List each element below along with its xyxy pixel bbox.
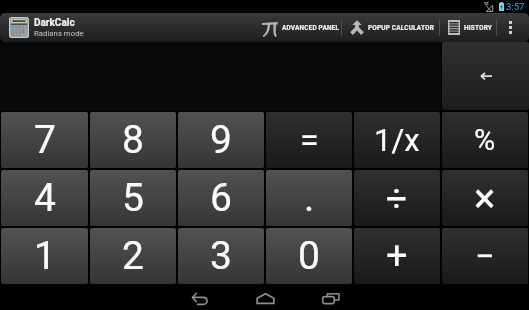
staticText: 3 bbox=[210, 233, 232, 279]
staticText: 9 bbox=[210, 117, 232, 163]
button[interactable]: 0 bbox=[266, 228, 352, 284]
button[interactable]: DarkCalc bbox=[0, 14, 110, 41]
staticText: ADVANCED PANEL bbox=[282, 24, 340, 32]
button[interactable]: 3 bbox=[178, 228, 264, 284]
button[interactable]: Home bbox=[250, 287, 280, 309]
staticText: 4 bbox=[34, 175, 56, 221]
staticText: Radians mode bbox=[34, 29, 84, 38]
staticText: POPUP CALCULATOR bbox=[368, 24, 434, 32]
button[interactable]: 1 bbox=[1, 228, 88, 284]
button[interactable]: Backspace bbox=[442, 42, 529, 110]
staticText: × bbox=[474, 175, 496, 222]
button[interactable]: 5 bbox=[90, 170, 176, 226]
staticText: 5 bbox=[122, 175, 144, 221]
staticText: 2 bbox=[122, 233, 144, 279]
button[interactable]: + bbox=[354, 228, 440, 284]
button[interactable]: = bbox=[266, 112, 352, 168]
button[interactable]: Recents bbox=[316, 287, 346, 309]
staticText: 0 bbox=[298, 233, 320, 279]
button[interactable]: 8 bbox=[90, 112, 176, 168]
button[interactable]: ÷ bbox=[354, 170, 440, 226]
button[interactable]: − bbox=[442, 228, 528, 284]
staticText: ÷ bbox=[386, 177, 408, 220]
button[interactable]: 1/x bbox=[354, 112, 440, 168]
button[interactable]: Back bbox=[184, 287, 214, 309]
button[interactable]: . bbox=[266, 170, 352, 226]
button[interactable]: 7 bbox=[1, 112, 88, 168]
button[interactable]: 4 bbox=[1, 170, 88, 226]
button[interactable]: More options bbox=[497, 13, 524, 42]
button[interactable]: × bbox=[442, 170, 528, 226]
button[interactable]: ADVANCED PANEL bbox=[242, 13, 341, 42]
staticText: 3:57 bbox=[506, 1, 525, 12]
button[interactable]: POPUP CALCULATOR bbox=[342, 13, 439, 42]
staticText: − bbox=[475, 236, 495, 276]
button[interactable]: HISTORY bbox=[440, 13, 496, 42]
staticText: + bbox=[386, 234, 408, 279]
staticText: 7 bbox=[34, 117, 56, 163]
staticText: 1/x bbox=[374, 122, 420, 158]
button[interactable]: 2 bbox=[90, 228, 176, 284]
staticText: = bbox=[300, 120, 319, 160]
staticText: % bbox=[474, 123, 496, 157]
button[interactable]: % bbox=[442, 112, 528, 168]
staticText: 6 bbox=[210, 175, 232, 221]
staticText: 1 bbox=[34, 233, 56, 279]
staticText: . bbox=[304, 175, 315, 221]
button[interactable]: 9 bbox=[178, 112, 264, 168]
staticText: HISTORY bbox=[464, 24, 492, 32]
staticText: 8 bbox=[122, 117, 144, 163]
button[interactable]: 6 bbox=[178, 170, 264, 226]
staticText: DarkCalc bbox=[34, 17, 75, 29]
